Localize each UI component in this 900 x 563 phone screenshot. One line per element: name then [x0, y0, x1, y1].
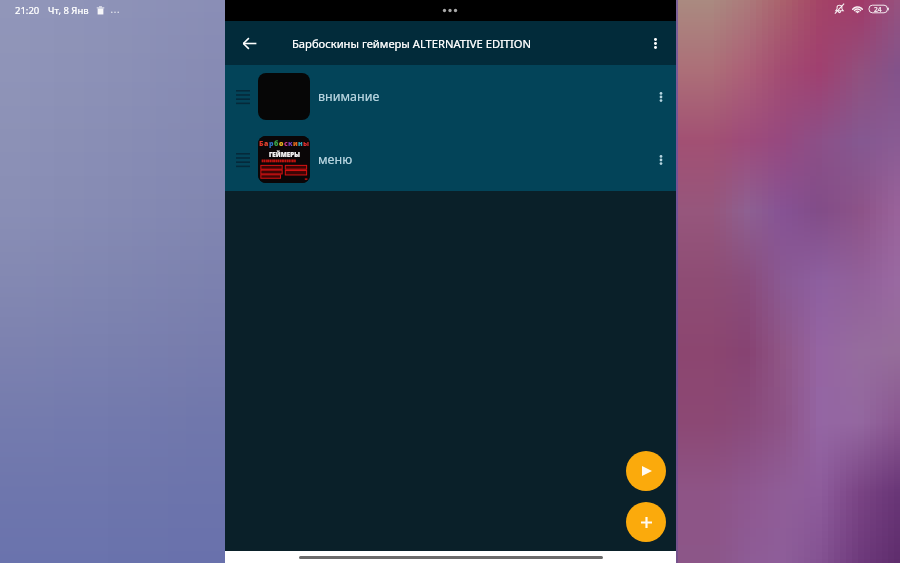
staticText: Чт, 8 Янв [48, 4, 89, 17]
button[interactable]: Play [626, 451, 666, 491]
staticText: о [279, 139, 284, 149]
button[interactable]: Item options [647, 146, 675, 174]
staticText: н [298, 139, 303, 149]
staticText: а [264, 139, 269, 149]
staticText: Барбоскины геймеры ALTERNATIVE EDITION [292, 36, 532, 51]
staticText: меню [318, 151, 353, 168]
button[interactable]: Add [626, 502, 666, 542]
button[interactable]: внимание [225, 65, 676, 128]
staticText: ы [303, 139, 310, 149]
staticText: б [274, 139, 279, 149]
staticText: Б [259, 139, 264, 149]
button[interactable]: Back [234, 28, 265, 59]
staticText: 21:20 [15, 4, 40, 17]
staticText: к [288, 139, 293, 149]
staticText: с [284, 139, 288, 149]
staticText: и [293, 139, 298, 149]
staticText: ГЕЙМЕРЫ [269, 150, 300, 158]
staticText: р [269, 139, 274, 149]
staticText: внимание [318, 88, 380, 105]
button[interactable]: Item options [647, 83, 675, 111]
button[interactable]: Б [225, 128, 676, 191]
button[interactable]: More options [640, 28, 670, 58]
staticText: 24 [874, 5, 882, 14]
